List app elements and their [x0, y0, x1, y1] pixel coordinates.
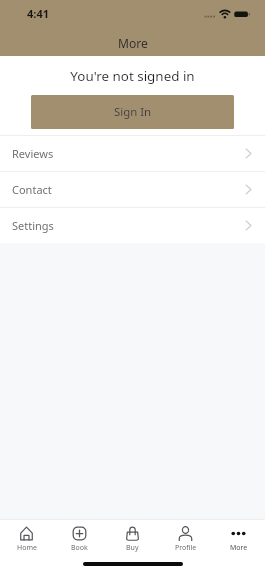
- staticText: More: [230, 543, 248, 553]
- staticText: Contact: [12, 182, 52, 197]
- staticText: You're not signed in: [0, 67, 265, 85]
- staticText: Profile: [175, 543, 197, 553]
- staticText: Sign In: [114, 104, 152, 120]
- button[interactable]: Sign In: [31, 95, 234, 129]
- button[interactable]: Buy: [106, 520, 159, 553]
- button[interactable]: Home: [0, 520, 53, 553]
- button[interactable]: Profile: [159, 520, 212, 553]
- staticText: Book: [71, 543, 88, 553]
- staticText: Home: [17, 543, 37, 553]
- staticText: Buy: [126, 543, 139, 553]
- staticText: Reviews: [12, 146, 54, 161]
- button[interactable]: Settings: [0, 208, 265, 243]
- button[interactable]: Contact: [0, 172, 265, 207]
- button[interactable]: Reviews: [0, 136, 265, 171]
- button[interactable]: Book: [53, 520, 106, 553]
- staticText: More: [118, 35, 148, 51]
- staticText: Settings: [12, 218, 54, 233]
- staticText: 4:41: [27, 6, 49, 21]
- button[interactable]: More: [212, 520, 265, 553]
